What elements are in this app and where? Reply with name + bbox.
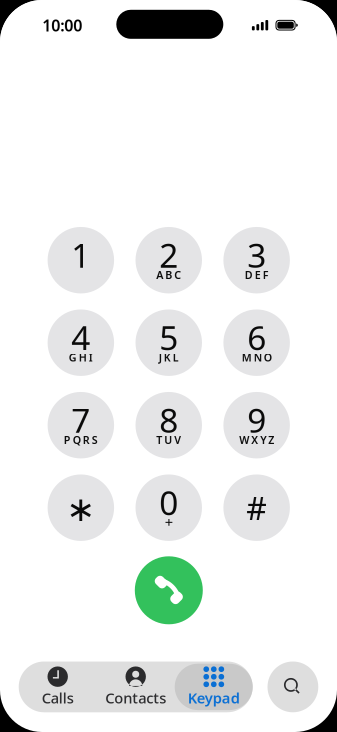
button[interactable]: 1 [48, 227, 114, 293]
button[interactable]: ∗ [48, 474, 114, 541]
button[interactable]: 9 [223, 392, 290, 458]
button[interactable]: 5 [135, 309, 202, 376]
staticText: Calls [42, 688, 74, 707]
staticText: A B C [156, 268, 181, 282]
staticText: J K L [159, 350, 179, 364]
staticText: ∗ [66, 489, 95, 529]
button[interactable]: Calls [19, 661, 97, 712]
staticText: 0 [159, 480, 178, 524]
staticText: 3 [247, 233, 266, 277]
staticText: 1 [71, 233, 90, 277]
staticText: 4 [71, 315, 90, 359]
staticText: + [165, 512, 173, 532]
button[interactable]: 2 [135, 227, 202, 293]
staticText: T U V [156, 433, 181, 447]
button[interactable]: 0 [135, 474, 202, 541]
staticText: 7 [71, 398, 90, 442]
button[interactable]: Contacts [97, 661, 175, 712]
button[interactable]: 6 [223, 309, 290, 376]
staticText: Keypad [188, 688, 240, 707]
button[interactable]: 4 [48, 309, 114, 376]
staticText: 8 [159, 398, 178, 442]
staticText: D E F [245, 268, 269, 282]
staticText: W X Y Z [239, 433, 274, 447]
staticText: M N O [242, 350, 272, 364]
button[interactable]: Call [135, 556, 203, 624]
button[interactable]: 3 [223, 227, 290, 293]
staticText: P Q R S [64, 433, 98, 447]
staticText: 2 [159, 233, 178, 277]
button[interactable]: 8 [135, 392, 202, 458]
staticText: # [246, 486, 267, 529]
button[interactable]: Search [267, 661, 318, 712]
staticText: 6 [247, 315, 266, 359]
button[interactable]: 7 [48, 392, 114, 458]
staticText: 9 [247, 398, 266, 442]
button[interactable]: Keypad [175, 661, 253, 712]
staticText: Contacts [105, 688, 166, 707]
button[interactable]: # [223, 474, 290, 541]
staticText: 5 [159, 315, 178, 359]
staticText: G H I [69, 350, 93, 364]
staticText: 10:00 [42, 15, 82, 36]
